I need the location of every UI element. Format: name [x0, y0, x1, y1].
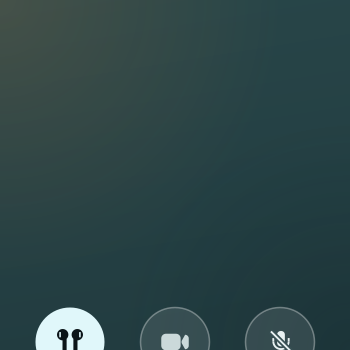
button[interactable]: Audio output: [35, 307, 104, 350]
button[interactable]: Camera: [140, 307, 209, 350]
button[interactable]: Mute: [245, 307, 314, 350]
